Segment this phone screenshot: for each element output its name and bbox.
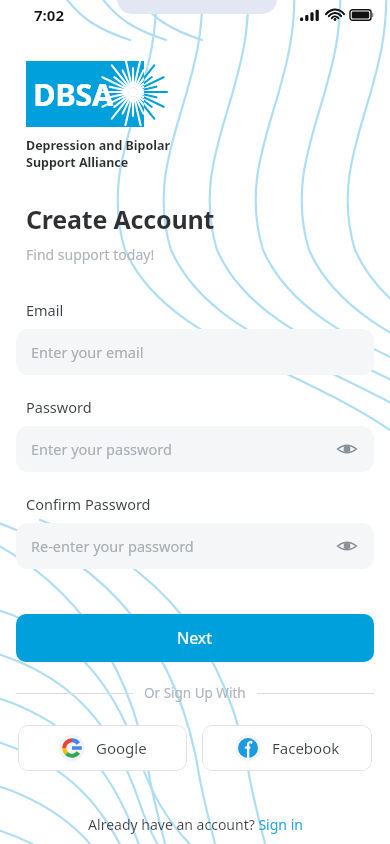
- staticText: Create Account: [26, 202, 215, 236]
- button[interactable]: Enter your email: [16, 329, 374, 375]
- staticText: Or Sign Up With: [144, 684, 246, 702]
- staticText: Confirm Password: [26, 494, 151, 514]
- staticText: Enter your password: [31, 439, 172, 459]
- staticText: Google: [96, 738, 147, 758]
- staticText: Password: [26, 397, 92, 417]
- staticText: Find support today!: [26, 245, 155, 264]
- staticText: Enter your email: [31, 342, 144, 362]
- staticText: Support Alliance: [26, 154, 129, 171]
- staticText: 7:02: [34, 5, 64, 25]
- button[interactable]: Already have an account? Sign in: [88, 815, 303, 834]
- button[interactable]: Show password: [334, 533, 360, 559]
- button[interactable]: Enter your password: [16, 426, 374, 472]
- staticText: Email: [26, 300, 64, 320]
- staticText: Depression and Bipolar: [26, 137, 171, 154]
- staticText: Facebook: [272, 738, 340, 758]
- button[interactable]: Facebook: [202, 725, 372, 771]
- staticText: Next: [177, 627, 213, 649]
- staticText: Re-enter your password: [31, 536, 194, 556]
- button[interactable]: Show password: [334, 436, 360, 462]
- button[interactable]: Next: [16, 614, 374, 662]
- staticText: DBSA: [33, 73, 113, 115]
- button[interactable]: Re-enter your password: [16, 523, 374, 569]
- button[interactable]: Google: [18, 725, 187, 771]
